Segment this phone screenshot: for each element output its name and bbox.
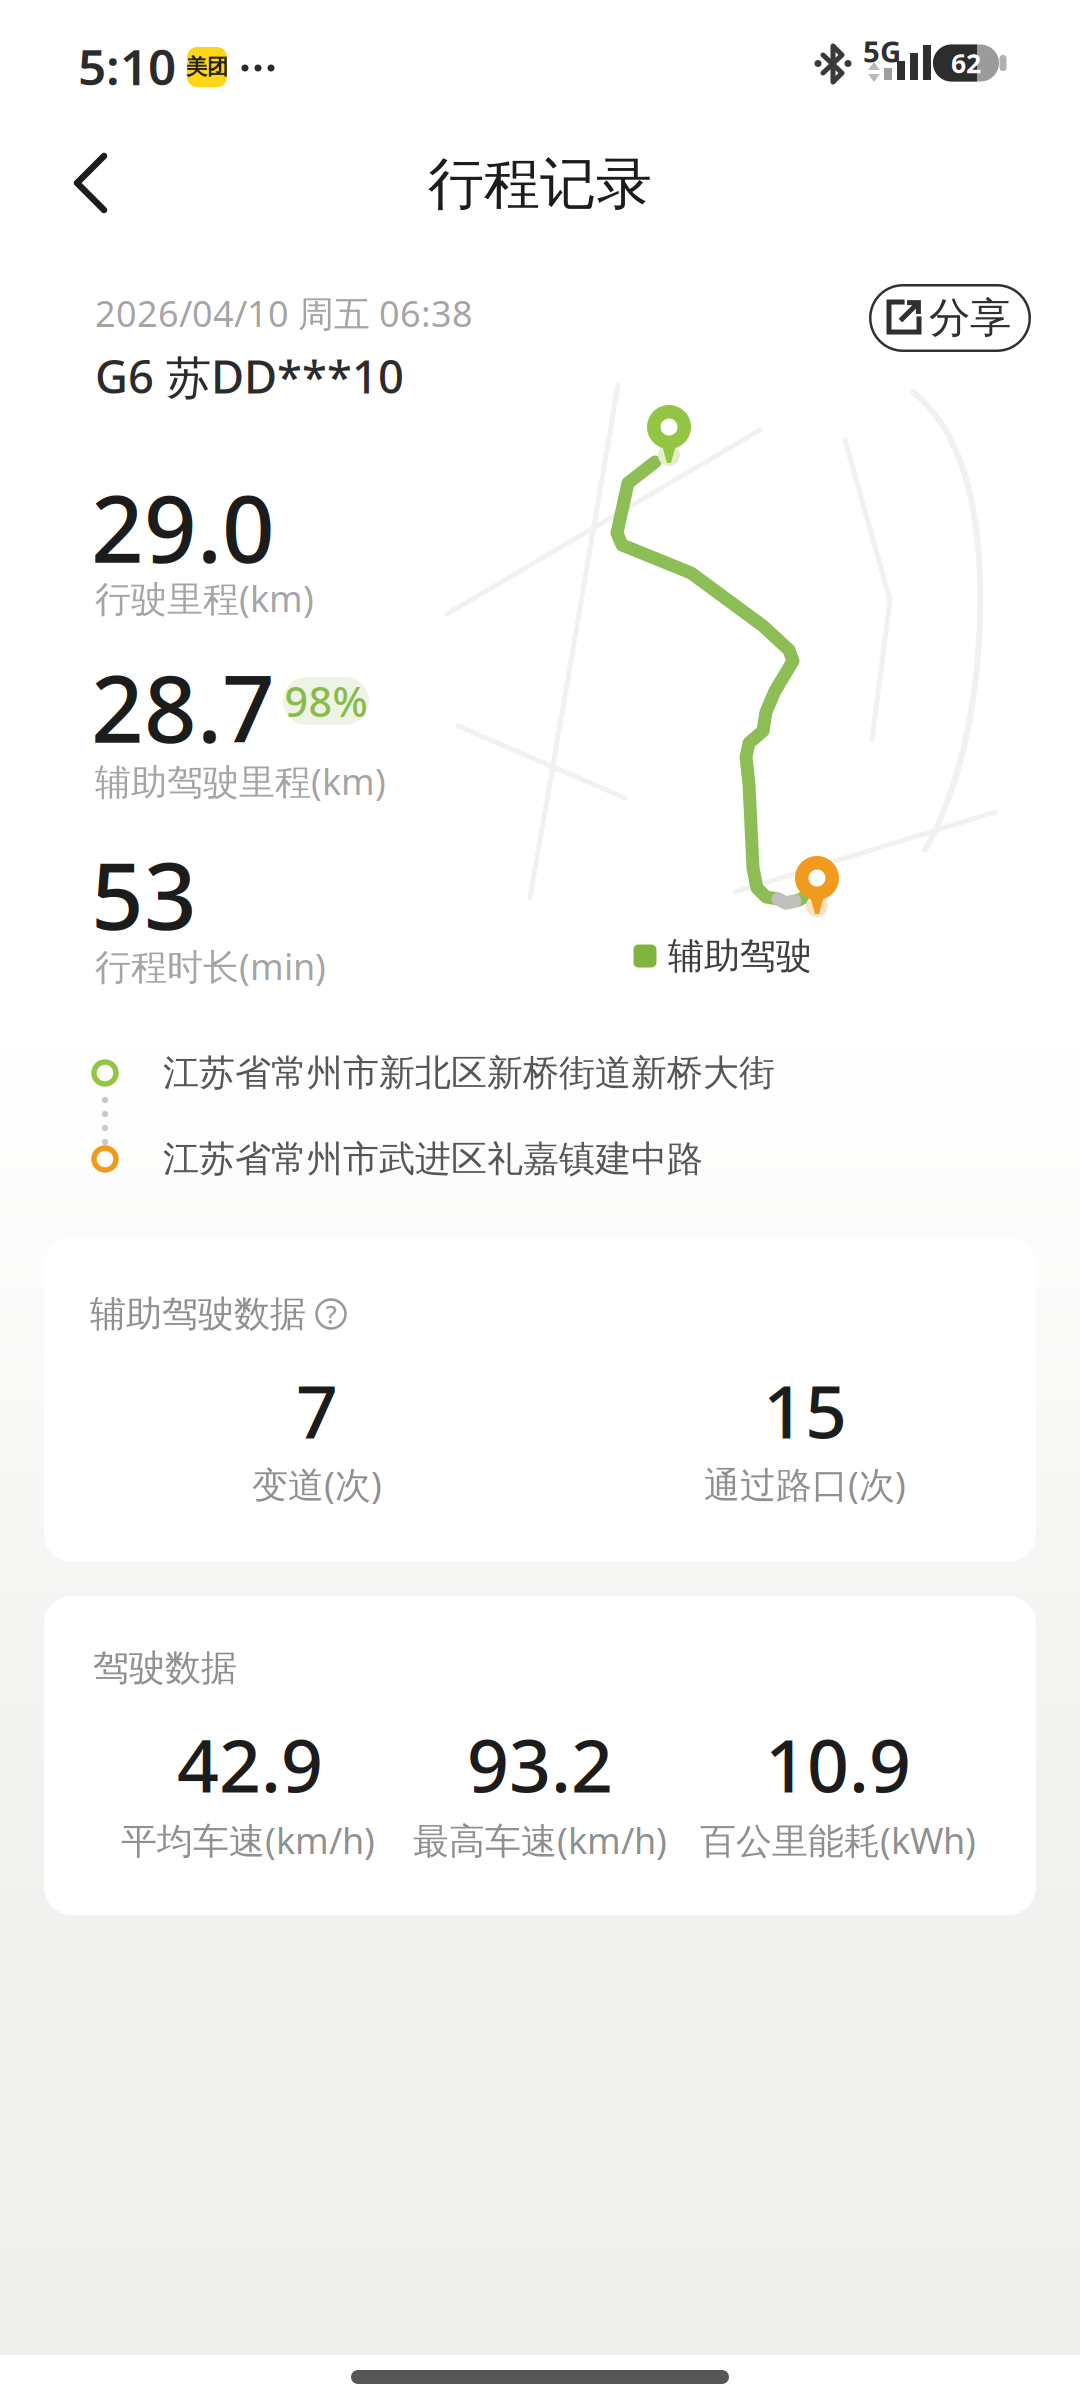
staticText: 辅助驾驶里程(km) (95, 757, 386, 805)
staticText: 42.9 (177, 1715, 323, 1813)
staticText: 5G (863, 31, 901, 70)
staticText: 98% (284, 674, 367, 728)
staticText: 辅助驾驶 (668, 934, 812, 978)
staticText: 平均车速(km/h) (121, 1816, 375, 1864)
staticText: 行程记录 (428, 150, 652, 218)
staticText: 辅助驾驶数据 (90, 1292, 306, 1336)
staticText: 53 (91, 833, 197, 955)
staticText: 通过路口(次) (704, 1460, 906, 1508)
staticText: 2026/04/10 周五 06:38 (95, 289, 473, 337)
staticText: G6 苏DD***10 (95, 346, 404, 406)
staticText: 93.2 (467, 1715, 613, 1813)
staticText: 29.0 (91, 466, 275, 588)
staticText: 行驶里程(km) (95, 574, 314, 622)
staticText: ? (325, 1297, 336, 1331)
staticText: 分享 (929, 293, 1011, 343)
staticText: 驾驶数据 (93, 1646, 237, 1690)
button[interactable]: 辅助驾驶数据说明 (316, 1299, 346, 1329)
staticText: 28.7 (91, 646, 275, 768)
button[interactable]: 返回 (0, 0, 1080, 2400)
staticText: 江苏省常州市新北区新桥街道新桥大街 (163, 1051, 775, 1095)
button[interactable]: 分享 (869, 284, 1031, 352)
staticText: 最高车速(km/h) (413, 1816, 667, 1864)
staticText: 15 (763, 1361, 847, 1459)
staticText: 5:10 (78, 33, 176, 99)
staticText: 行程时长(min) (95, 942, 326, 990)
button[interactable]: 美团通知 (186, 47, 228, 87)
staticText: 美团 (186, 54, 228, 80)
staticText: 10.9 (765, 1715, 911, 1813)
staticText: 变道(次) (252, 1460, 382, 1508)
staticText: 百公里能耗(kWh) (700, 1816, 976, 1864)
staticText: 7 (296, 1361, 338, 1459)
staticText: 江苏省常州市武进区礼嘉镇建中路 (163, 1137, 703, 1181)
staticText: 62 (951, 45, 981, 81)
